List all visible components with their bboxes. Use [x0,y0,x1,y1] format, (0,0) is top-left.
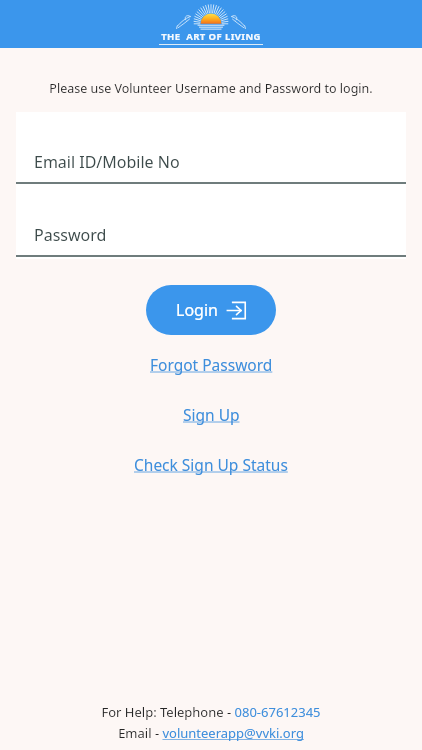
button[interactable]: Password [16,184,406,257]
button[interactable]: Sign Up [177,402,246,427]
staticText: Please use Volunteer Username and Passwo… [0,80,422,97]
staticText: Email ID/Mobile No [34,151,180,173]
staticText: Password [34,224,107,246]
staticText: THE ART OF LIVING [161,30,261,43]
button[interactable]: Email ID/Mobile No [16,112,406,184]
button[interactable]: Check Sign Up Status [128,452,294,477]
staticText: For Help: Telephone - 080-67612345 [0,703,422,721]
button[interactable]: Login [146,285,276,335]
staticText: Login [176,299,218,321]
button[interactable]: Forgot Password [144,352,279,377]
other: Login [227,301,246,320]
staticText: Email - volunteerapp@vvki.org [0,724,422,742]
